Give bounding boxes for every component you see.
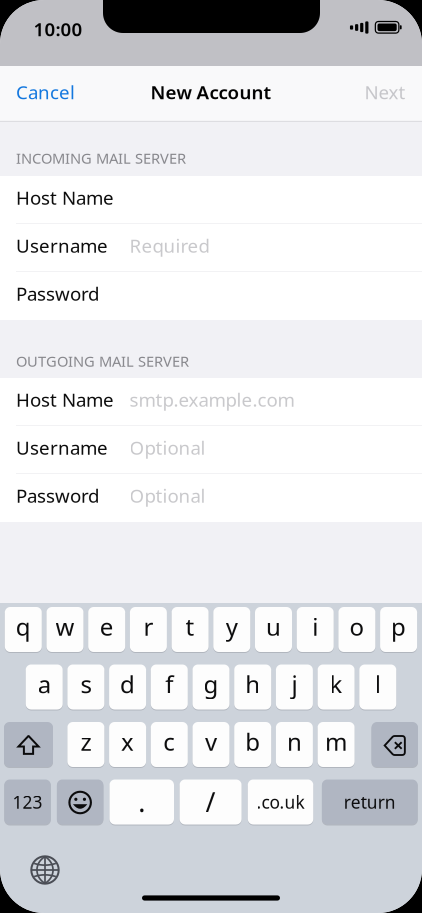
staticText: Cancel — [16, 80, 75, 104]
button[interactable]: Next keyboard — [30, 855, 59, 884]
button[interactable]: b — [234, 722, 271, 767]
button[interactable]: y — [213, 607, 250, 652]
staticText: w — [55, 611, 74, 642]
button[interactable]: x — [109, 722, 146, 767]
button[interactable]: p — [380, 607, 417, 652]
button[interactable]: Username — [0, 224, 422, 272]
staticText: k — [330, 668, 343, 700]
staticText: New Account — [150, 80, 271, 104]
staticText: u — [266, 611, 281, 642]
staticText: Host Name — [16, 185, 114, 210]
button[interactable]: t — [172, 607, 209, 652]
button[interactable]: Host Name — [0, 378, 422, 426]
staticText: smtp.example.com — [129, 387, 294, 412]
button[interactable]: l — [359, 664, 396, 709]
staticText: p — [391, 611, 406, 642]
staticText: Required — [129, 233, 209, 258]
staticText: return — [344, 790, 396, 813]
button[interactable]: j — [276, 664, 313, 709]
button[interactable]: Password — [0, 272, 422, 320]
button[interactable]: n — [276, 722, 313, 767]
staticText: Username — [16, 435, 108, 460]
staticText: f — [165, 668, 173, 700]
button[interactable]: Username — [0, 426, 422, 474]
button[interactable]: r — [130, 607, 167, 652]
staticText: y — [226, 611, 238, 642]
button[interactable]: o — [338, 607, 375, 652]
staticText: Host Name — [16, 387, 114, 412]
button[interactable]: Emoji — [57, 779, 103, 824]
button[interactable]: w — [46, 607, 83, 652]
button[interactable]: f — [151, 664, 188, 709]
staticText: Optional — [129, 483, 205, 508]
button[interactable]: a — [26, 664, 63, 709]
button[interactable]: Password — [0, 474, 422, 522]
staticText: Password — [16, 281, 99, 306]
staticText: Password — [16, 483, 99, 508]
staticText: j — [291, 668, 297, 700]
button[interactable]: Numbers — [4, 779, 51, 824]
staticText: .co.uk — [257, 790, 305, 813]
button[interactable]: v — [192, 722, 229, 767]
button[interactable]: u — [255, 607, 292, 652]
button[interactable]: Shift — [4, 722, 53, 767]
staticText: c — [163, 726, 175, 757]
button[interactable]: Cancel — [6, 69, 85, 115]
staticText: 10:00 — [33, 17, 82, 41]
button[interactable]: .co.uk — [248, 779, 313, 824]
button[interactable]: Delete — [371, 722, 418, 767]
button[interactable]: m — [318, 722, 355, 767]
staticText: a — [38, 668, 51, 700]
button[interactable]: k — [318, 664, 355, 709]
staticText: d — [120, 668, 135, 700]
button[interactable]: g — [192, 664, 229, 709]
button[interactable]: z — [67, 722, 104, 767]
staticText: Optional — [129, 435, 205, 460]
staticText: m — [325, 726, 347, 757]
staticText: o — [349, 611, 364, 642]
staticText: t — [186, 611, 195, 642]
button[interactable]: Period — [109, 779, 174, 824]
button[interactable]: i — [297, 607, 334, 652]
staticText: / — [206, 784, 216, 820]
button[interactable]: s — [67, 664, 104, 709]
staticText: v — [205, 726, 217, 757]
staticText: h — [245, 668, 260, 700]
button[interactable]: Slash — [180, 779, 242, 824]
button[interactable]: Host Name — [0, 176, 422, 224]
staticText: g — [203, 668, 218, 700]
staticText: n — [287, 726, 302, 757]
staticText: OUTGOING MAIL SERVER — [16, 351, 189, 371]
button[interactable]: Return — [322, 779, 418, 824]
staticText: b — [245, 726, 260, 757]
staticText: e — [100, 611, 114, 642]
button[interactable]: c — [151, 722, 188, 767]
staticText: q — [16, 611, 31, 642]
staticText: r — [143, 611, 153, 642]
button[interactable]: q — [5, 607, 42, 652]
staticText: x — [121, 726, 134, 757]
staticText: i — [312, 611, 318, 642]
staticText: INCOMING MAIL SERVER — [16, 148, 186, 168]
staticText: s — [80, 668, 91, 700]
staticText: l — [375, 668, 381, 700]
button[interactable]: h — [234, 664, 271, 709]
staticText: 123 — [13, 790, 43, 813]
staticText: Next — [364, 80, 405, 104]
staticText: z — [80, 726, 91, 757]
button[interactable]: e — [88, 607, 125, 652]
button[interactable]: Next — [354, 69, 415, 115]
staticText: Username — [16, 233, 108, 258]
staticText: . — [138, 784, 145, 820]
button[interactable]: d — [109, 664, 146, 709]
